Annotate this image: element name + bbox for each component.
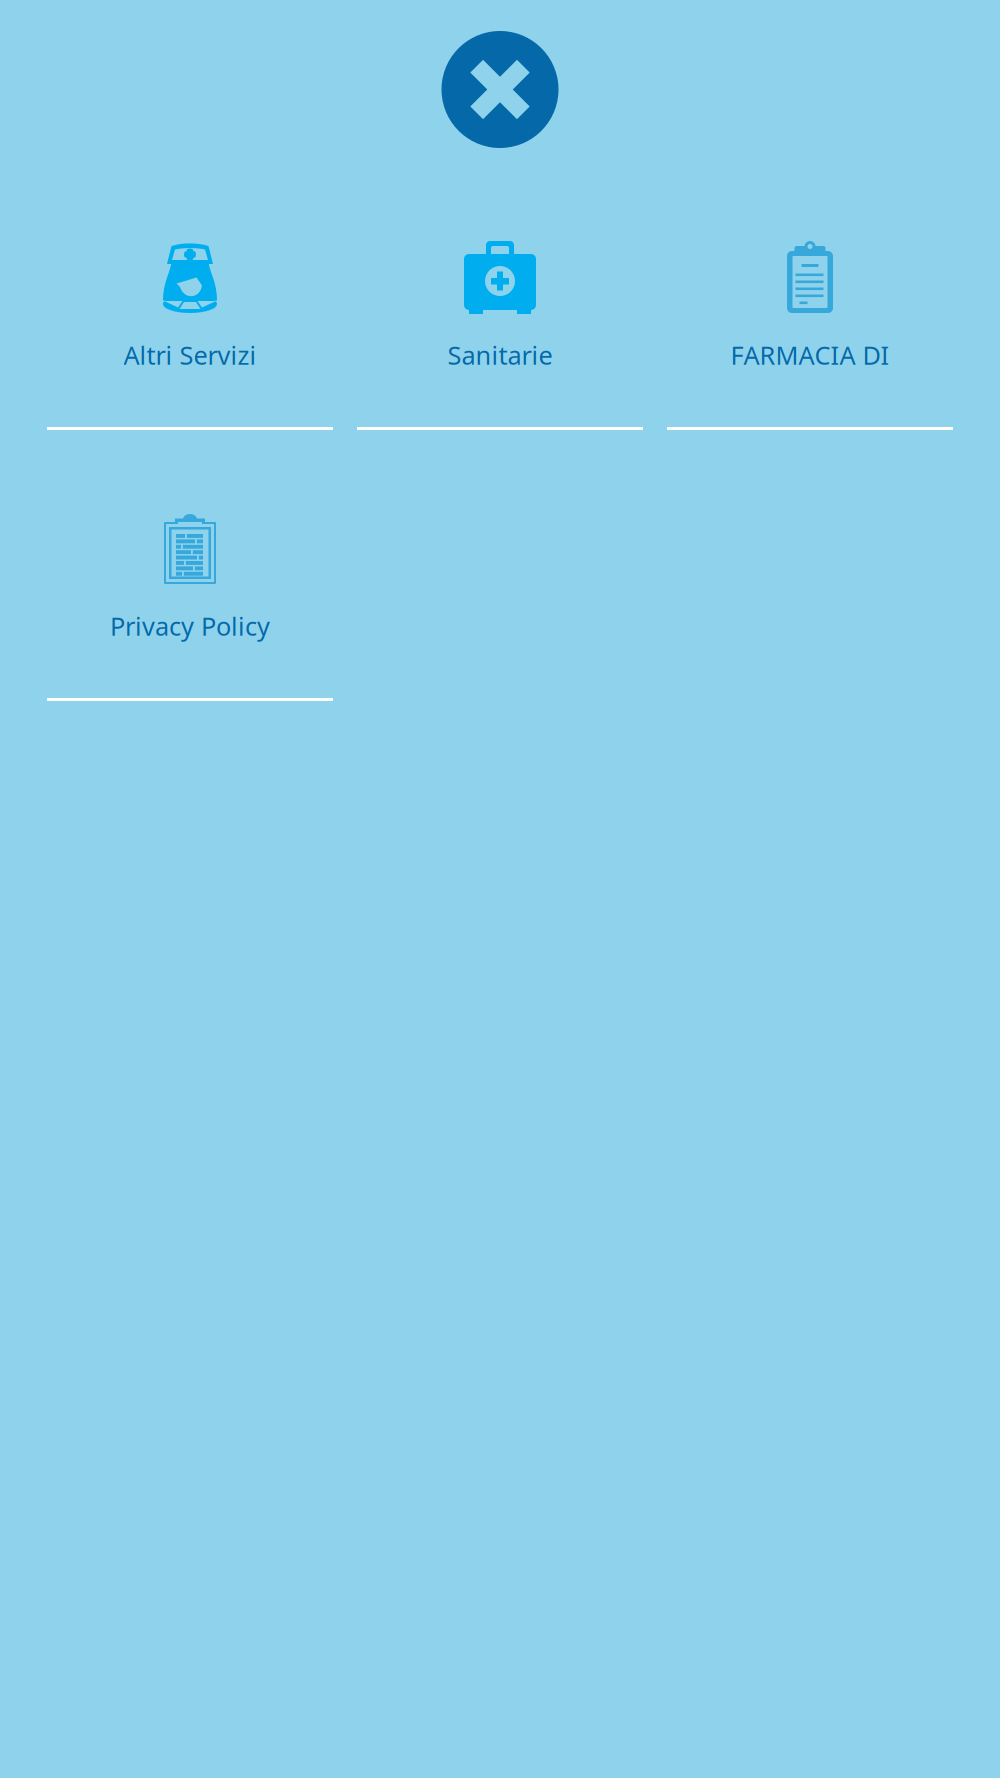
button[interactable]: Privacy Policy — [47, 513, 333, 701]
button[interactable]: Altri Servizi — [47, 242, 333, 430]
button[interactable]: FARMACIA DI — [667, 242, 953, 430]
button[interactable]: Close — [441, 31, 558, 148]
staticText: Privacy Policy — [110, 609, 270, 643]
staticText: Sanitarie — [447, 338, 552, 372]
staticText: FARMACIA DI — [730, 338, 889, 372]
button[interactable]: Sanitarie — [357, 242, 643, 430]
staticText: Altri Servizi — [123, 338, 256, 372]
